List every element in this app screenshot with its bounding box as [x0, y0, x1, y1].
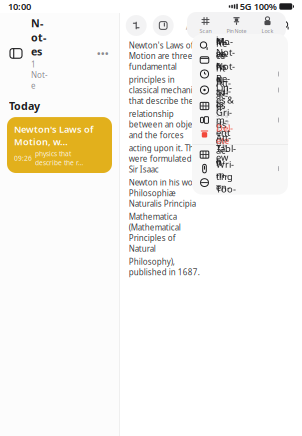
staticText: Move Note — [216, 35, 235, 85]
staticText: Today — [9, 99, 40, 113]
staticText: Newton's Laws of Motion are three fundam… — [129, 40, 194, 72]
staticText: physics that describe the r… — [35, 149, 83, 167]
button[interactable]: Lines & Grids — [192, 99, 288, 113]
button[interactable]: New Note — [153, 15, 174, 36]
staticText: Lines & Grids — [216, 81, 234, 131]
staticText: Mathematica (Mathematical Principles of … — [129, 211, 181, 254]
button[interactable]: Move Note — [192, 53, 288, 67]
button[interactable]: More options — [94, 45, 112, 61]
staticText: relationship between an object and the f… — [129, 108, 200, 140]
button[interactable]: Lock — [253, 16, 282, 35]
button[interactable]: Recent Notes — [192, 67, 288, 81]
button[interactable]: Attachment View — [192, 113, 288, 127]
button[interactable]: Pin Note — [222, 16, 251, 35]
button[interactable]: Attachments — [192, 162, 288, 176]
staticText: principles in classical mechanics that d… — [129, 74, 201, 106]
button[interactable]: Scan — [191, 16, 220, 35]
button[interactable]: Writing Tools — [192, 176, 288, 190]
staticText: 1 Note — [31, 59, 48, 91]
staticText: ••• — [97, 47, 109, 60]
button[interactable]: Expand Note — [126, 15, 147, 36]
staticText: acting upon it. They were formulated by … — [129, 143, 203, 175]
button[interactable]: Find in Note — [192, 39, 288, 53]
staticText: 5G — [238, 0, 252, 13]
staticText: 100% — [252, 0, 277, 13]
button[interactable]: Delete — [192, 127, 288, 141]
button[interactable]: Search — [275, 15, 296, 36]
staticText: Attachments — [216, 131, 231, 206]
staticText: Delete — [216, 122, 233, 146]
button[interactable]: Newton's Laws of Motion, w… — [7, 117, 112, 173]
staticText: Lock — [261, 27, 273, 35]
staticText: Recent Notes — [216, 37, 230, 111]
staticText: Suggest Results — [216, 109, 230, 145]
staticText: Philosophy), published in 1687. — [129, 256, 200, 277]
staticText: Notes — [31, 16, 46, 58]
staticText: Table — [216, 142, 236, 167]
staticText: Writing Tools — [216, 158, 236, 207]
staticText: 10:00 — [8, 0, 31, 13]
staticText: Newton's Laws of Motion, w… — [14, 123, 93, 148]
button[interactable]: Table — [192, 148, 288, 162]
button[interactable]: Maths Results — [192, 81, 288, 99]
staticText: Pin Note — [226, 27, 246, 35]
button[interactable]: Format — [182, 15, 203, 36]
staticText: Scan — [199, 27, 211, 35]
staticText: Newton in his work Philosophiæ Naturalis… — [129, 177, 200, 209]
staticText: 09:26 — [14, 154, 32, 163]
button[interactable]: Toggle Sidebar — [7, 44, 25, 62]
staticText: Find in Note — [216, 21, 235, 71]
staticText: Aa — [186, 18, 199, 33]
staticText: Maths Results — [216, 35, 231, 109]
staticText: Attachment View — [216, 77, 231, 163]
